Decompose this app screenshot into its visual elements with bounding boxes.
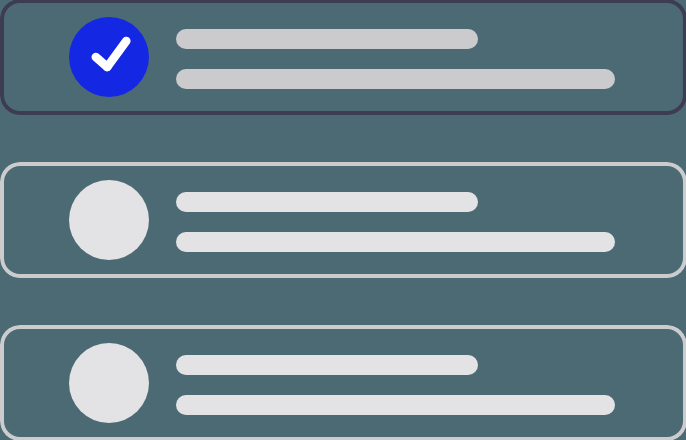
button[interactable]: Item selected — [0, 0, 686, 115]
other: Item selected — [69, 17, 149, 97]
button[interactable] — [0, 162, 686, 278]
button[interactable] — [0, 325, 686, 440]
